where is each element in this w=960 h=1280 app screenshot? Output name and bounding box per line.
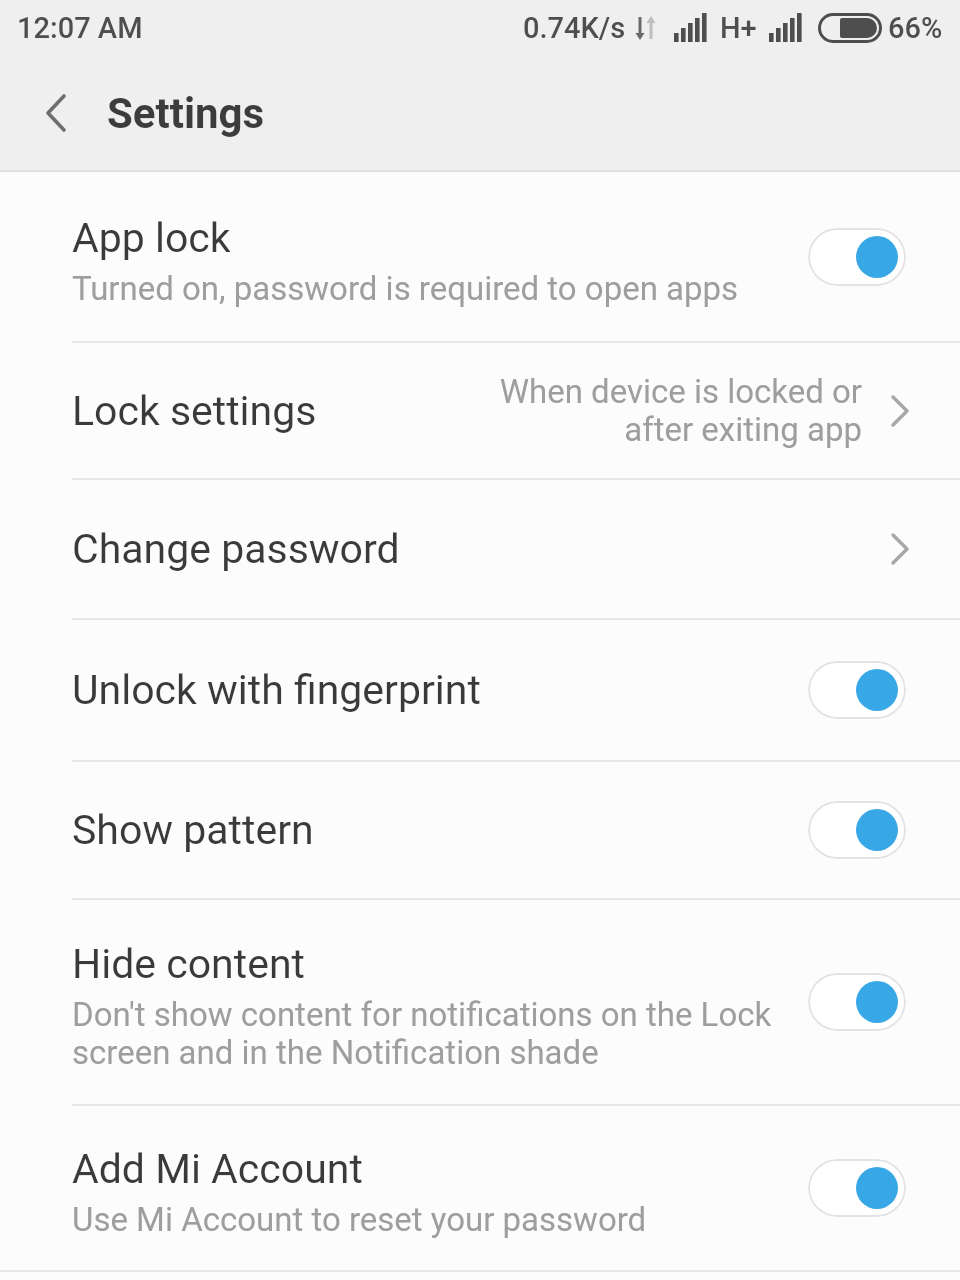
- button[interactable]: Hide content: [0, 900, 960, 1104]
- button[interactable]: [808, 1159, 906, 1217]
- button[interactable]: [808, 801, 906, 859]
- staticText: 66%: [888, 11, 943, 45]
- staticText: 12:07 AM: [17, 11, 143, 45]
- staticText: Hide content: [72, 940, 305, 988]
- staticText: Settings: [107, 89, 265, 138]
- staticText: Change password: [72, 525, 400, 573]
- button[interactable]: Unlock with fingerprint: [0, 620, 960, 760]
- staticText: App lock: [72, 214, 231, 262]
- button[interactable]: Lock settings: [0, 343, 960, 478]
- staticText: Add Mi Account: [72, 1145, 363, 1193]
- staticText: Lock settings: [72, 387, 317, 435]
- button[interactable]: [36, 93, 76, 133]
- button[interactable]: Add Mi Account: [0, 1106, 960, 1270]
- staticText: Don't show content for notifications on …: [72, 995, 772, 1072]
- staticText: Turned on, password is required to open …: [72, 269, 739, 308]
- button[interactable]: [808, 661, 906, 719]
- button[interactable]: Show pattern: [0, 762, 960, 898]
- staticText: Unlock with fingerprint: [72, 666, 481, 714]
- staticText: H+: [720, 11, 757, 45]
- staticText: Show pattern: [72, 806, 314, 854]
- button[interactable]: Change password: [0, 480, 960, 618]
- staticText: Use Mi Account to reset your password: [72, 1200, 647, 1239]
- button[interactable]: App lock: [0, 172, 960, 341]
- button[interactable]: [808, 973, 906, 1031]
- staticText: 0.74K/s: [523, 11, 626, 45]
- button[interactable]: [808, 228, 906, 286]
- staticText: When device is locked or after exiting a…: [499, 372, 862, 449]
